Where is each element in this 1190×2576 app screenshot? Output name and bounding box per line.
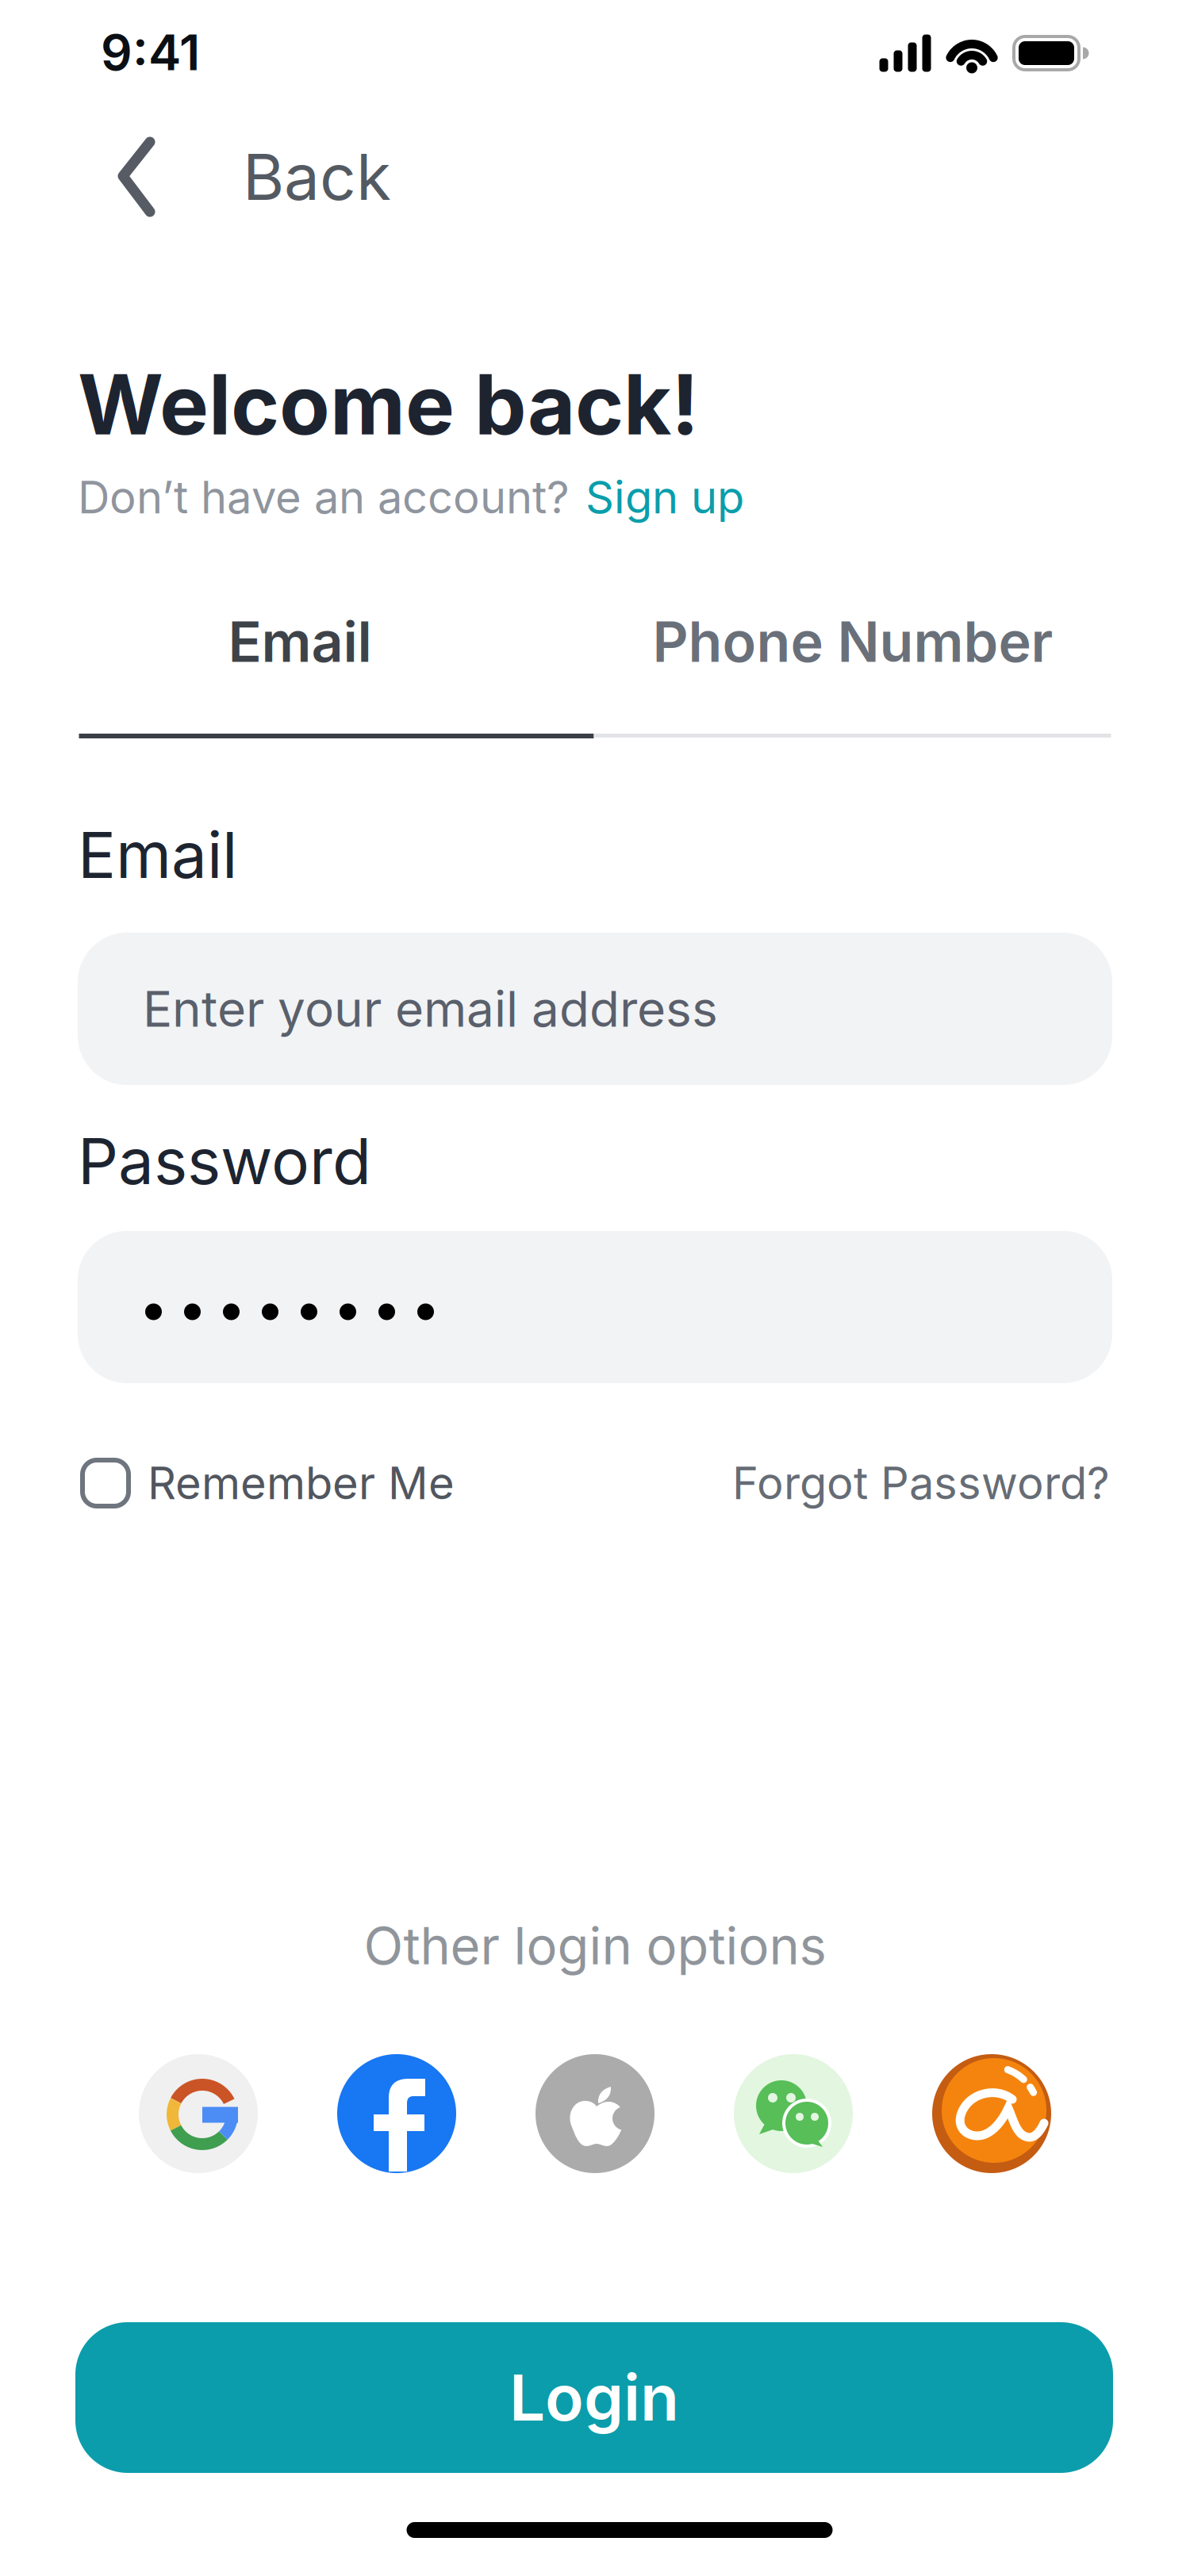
button[interactable]: [734, 2054, 853, 2173]
button[interactable]: [139, 2054, 258, 2173]
staticText: Login: [509, 2359, 679, 2436]
staticText: Forgot Password?: [732, 1456, 1110, 1510]
staticText: Enter your email address: [143, 979, 718, 1039]
staticText: Phone Number: [653, 608, 1053, 675]
staticText: Welcome back!: [78, 355, 699, 454]
button[interactable]: Forgot Password?: [555, 1451, 1110, 1515]
button[interactable]: [78, 1231, 1112, 1383]
staticText: Password: [78, 1123, 371, 1199]
staticText: Email: [78, 817, 237, 893]
staticText: Other login options: [364, 1914, 826, 1977]
button[interactable]: Login: [75, 2322, 1113, 2473]
staticText: Don’t have an account?: [78, 470, 570, 524]
staticText: Remember Me: [148, 1456, 455, 1510]
button[interactable]: Enter your email address: [78, 933, 1112, 1085]
staticText: Sign up: [585, 470, 744, 524]
button[interactable]: Back: [117, 133, 593, 220]
button[interactable]: Sign up: [585, 470, 744, 524]
staticText: 9:41: [101, 23, 200, 82]
button[interactable]: Phone Number: [559, 602, 1146, 681]
button[interactable]: Email: [78, 602, 522, 681]
button[interactable]: [337, 2054, 456, 2173]
staticText: Email: [228, 608, 372, 675]
button[interactable]: Remember Me: [80, 1451, 635, 1515]
button[interactable]: [932, 2054, 1051, 2173]
button[interactable]: [535, 2054, 654, 2173]
staticText: Back: [243, 138, 391, 215]
